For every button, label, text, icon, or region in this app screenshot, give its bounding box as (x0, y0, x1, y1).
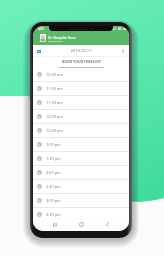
button[interactable]: 3:00 pm (33, 194, 129, 207)
staticText: Homeopathy (48, 39, 63, 42)
button[interactable]: 3:30 pm (33, 208, 129, 221)
button[interactable]: 10:30 am (33, 68, 129, 81)
staticText: 3:00 pm (46, 198, 61, 203)
staticText: 10:30 am (46, 72, 63, 77)
button[interactable]: 12:30 pm (33, 124, 129, 137)
button[interactable]: 2:30 pm (33, 180, 129, 193)
button[interactable]: 2019-10-17 (33, 45, 129, 56)
staticText: 12:00 pm (46, 114, 63, 119)
button[interactable]: Back (102, 219, 113, 230)
staticText: 3:30 pm (46, 212, 61, 217)
button[interactable]: 2:00 pm (33, 166, 129, 179)
staticText: 1:30 pm (46, 156, 61, 161)
button[interactable]: 1:30 pm (33, 152, 129, 165)
button[interactable]: 11:30 am (33, 96, 129, 109)
staticText: 12:30 pm (46, 128, 63, 133)
button[interactable]: Recent apps (49, 219, 60, 230)
staticText: 6:06 (38, 27, 44, 31)
button[interactable]: 11:00 am (33, 82, 129, 95)
button[interactable]: 1:00 pm (33, 138, 129, 151)
button[interactable]: 12:00 pm (33, 110, 129, 123)
staticText: Dr. Shaqufta Naaz (48, 35, 76, 39)
staticText: 11:00 am (46, 86, 63, 91)
button[interactable]: Home (76, 219, 87, 230)
staticText: 2:00 pm (46, 170, 61, 175)
staticText: 1:00 pm (46, 142, 61, 147)
staticText: 11:30 am (46, 100, 63, 105)
button[interactable]: BOOK YOUR TIMESLOT (33, 57, 129, 68)
staticText: 2019-10-17 (41, 48, 121, 53)
staticText: 2:30 pm (46, 184, 61, 189)
staticText: BOOK YOUR TIMESLOT (62, 59, 101, 64)
